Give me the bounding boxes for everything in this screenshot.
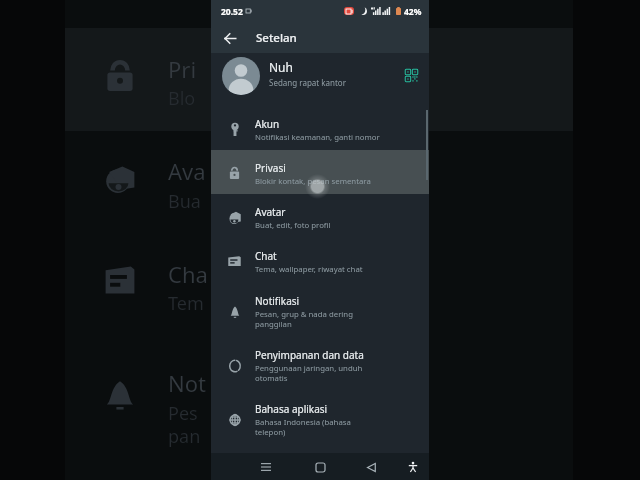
- staticText: Pesan, grup & nada dering panggilan: [255, 309, 353, 329]
- button[interactable]: Penyimpanan dan data: [211, 336, 429, 390]
- staticText: Bua: [168, 189, 201, 214]
- button[interactable]: Notifikasi: [211, 282, 429, 336]
- button[interactable]: QR code: [401, 65, 421, 85]
- staticText: Tema, wallpaper, riwayat chat: [255, 264, 363, 275]
- staticText: Not: [168, 368, 206, 398]
- button[interactable]: Avatar: [211, 194, 429, 238]
- staticText: pan: [168, 424, 201, 449]
- staticText: Bahasa aplikasi: [255, 402, 328, 416]
- button[interactable]: Recent apps: [253, 454, 279, 480]
- staticText: Notifikasi: [255, 294, 300, 308]
- staticText: Chat: [255, 249, 277, 263]
- staticText: 42%: [404, 6, 422, 18]
- button[interactable]: Akun: [211, 106, 429, 150]
- staticText: Pri: [168, 54, 197, 84]
- staticText: Blokir kontak, pesan sementara: [255, 176, 371, 187]
- staticText: Penggunaan jaringan, unduh otomatis: [255, 363, 363, 383]
- staticText: Penyimpanan dan data: [255, 348, 364, 362]
- staticText: Pes: [168, 401, 198, 426]
- staticText: Nuh: [269, 59, 293, 75]
- staticText: Privasi: [255, 161, 286, 175]
- staticText: Bahasa Indonesia (bahasa telepon): [255, 417, 351, 437]
- button[interactable]: Chat: [211, 238, 429, 282]
- staticText: Tem: [168, 291, 204, 316]
- staticText: Ava: [168, 156, 206, 186]
- staticText: Cha: [168, 259, 208, 289]
- button[interactable]: Nuh: [211, 53, 429, 102]
- button[interactable]: Back: [358, 454, 384, 480]
- staticText: Akun: [255, 117, 280, 131]
- button[interactable]: Bahasa aplikasi: [211, 390, 429, 444]
- staticText: 20.52: [221, 6, 243, 18]
- button[interactable]: Accessibility: [401, 455, 425, 479]
- staticText: Avatar: [255, 205, 286, 219]
- staticText: Buat, edit, foto profil: [255, 220, 331, 231]
- button[interactable]: Home: [307, 454, 333, 480]
- button[interactable]: Privasi: [211, 150, 429, 194]
- staticText: Sedang rapat kantor: [269, 77, 346, 88]
- staticText: Blo: [168, 86, 196, 111]
- staticText: Notifikasi keamanan, ganti nomor: [255, 132, 380, 143]
- staticText: Setelan: [256, 30, 297, 46]
- button[interactable]: Back: [218, 26, 242, 50]
